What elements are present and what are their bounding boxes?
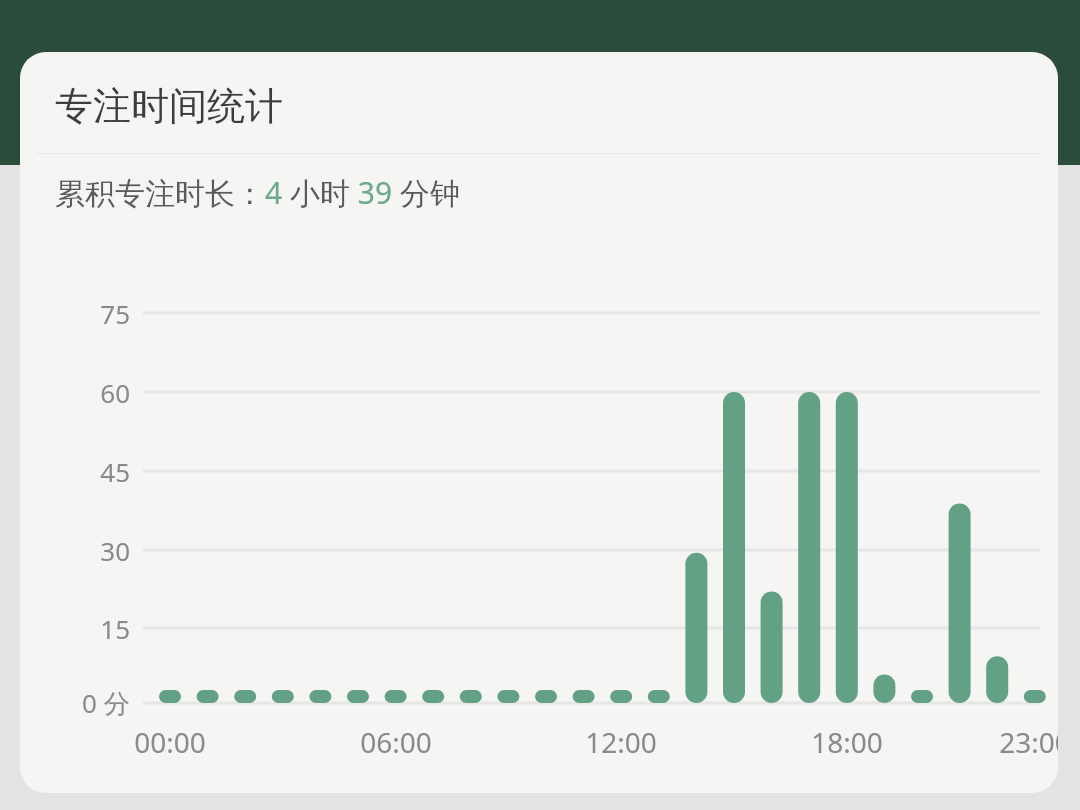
staticText: 00:00	[134, 723, 206, 761]
staticText: 45	[100, 454, 130, 489]
staticText: 60	[100, 375, 130, 410]
staticText: 23:00	[999, 723, 1058, 761]
button[interactable]: 专注时间统计	[20, 52, 1058, 793]
staticText: 06:00	[360, 723, 432, 761]
staticText: 0 分	[82, 685, 130, 721]
staticText: 15	[100, 611, 130, 646]
staticText: 18:00	[811, 723, 883, 761]
staticText: 30	[100, 533, 130, 568]
staticText: 专注时间统计	[55, 82, 283, 130]
staticText: 75	[100, 296, 130, 331]
staticText: 12:00	[585, 723, 657, 761]
staticText: 累积专注时长：4 小时 39 分钟	[55, 172, 460, 213]
